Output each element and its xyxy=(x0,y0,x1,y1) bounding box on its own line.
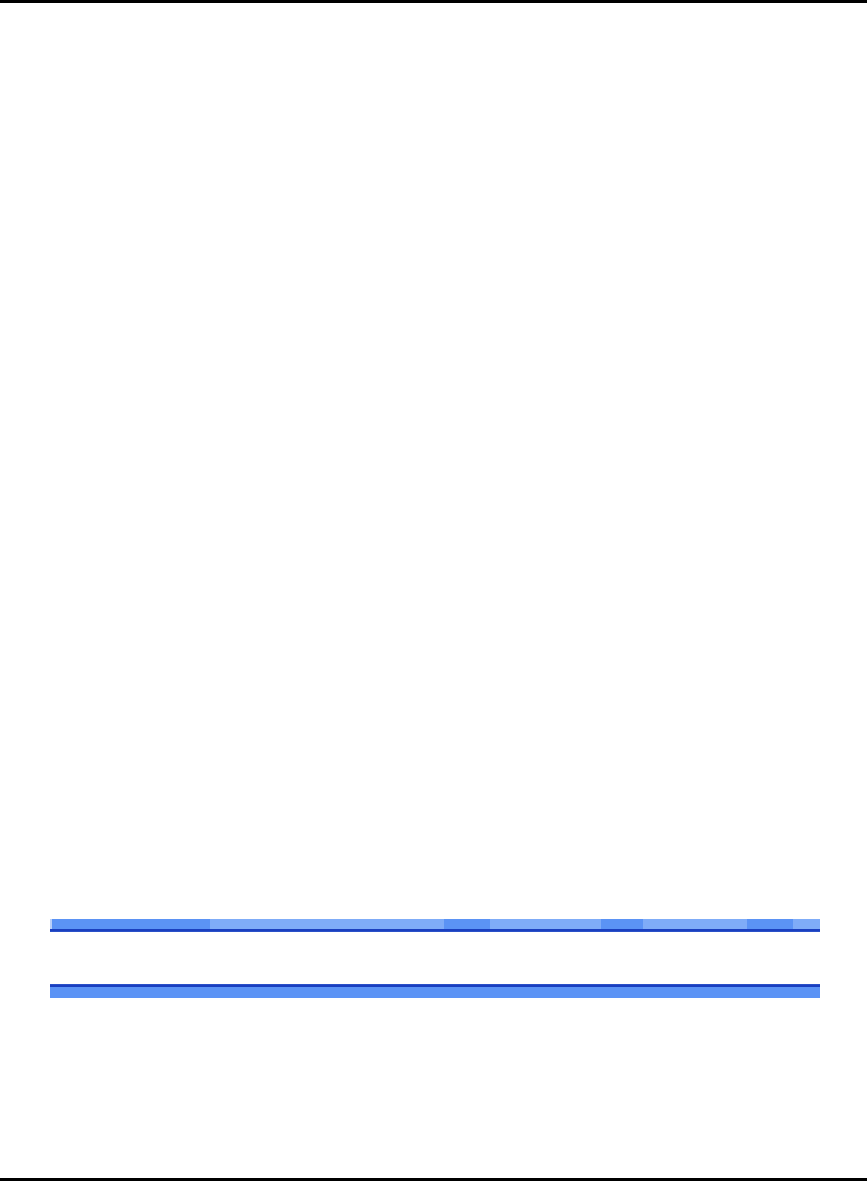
button[interactable]: Progress track xyxy=(50,919,820,932)
button[interactable]: Secondary track xyxy=(50,984,820,998)
